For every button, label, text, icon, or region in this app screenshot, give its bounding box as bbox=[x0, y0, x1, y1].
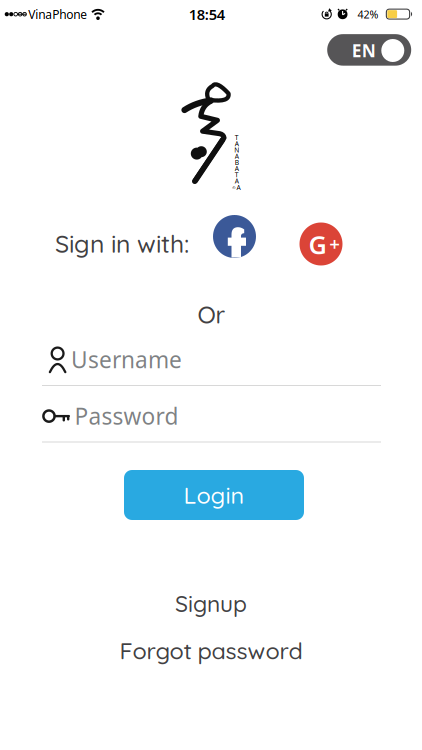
staticText: A bbox=[235, 152, 239, 161]
staticText: Username bbox=[71, 344, 182, 374]
staticText: T bbox=[235, 133, 239, 142]
button[interactable]: Sign in with Google bbox=[299, 222, 342, 265]
staticText: Forgot password bbox=[119, 636, 302, 665]
button[interactable]: Login bbox=[124, 470, 304, 520]
button[interactable]: Language: English bbox=[327, 34, 411, 66]
staticText: N bbox=[234, 145, 239, 154]
staticText: A bbox=[236, 183, 240, 192]
staticText: Signup bbox=[175, 589, 247, 618]
staticText: + bbox=[329, 231, 340, 256]
button[interactable]: Signup bbox=[175, 589, 247, 618]
staticText: A bbox=[235, 164, 239, 173]
button[interactable]: Password bbox=[42, 402, 381, 442]
staticText: 42% bbox=[357, 7, 378, 21]
staticText: A bbox=[235, 176, 239, 185]
staticText: T bbox=[235, 170, 239, 179]
staticText: Login bbox=[183, 480, 244, 510]
button[interactable]: Sign in with Facebook bbox=[213, 215, 256, 258]
staticText: VinaPhone bbox=[28, 6, 87, 22]
staticText: Or bbox=[197, 299, 225, 329]
staticText: B bbox=[235, 158, 239, 167]
staticText: EN bbox=[352, 39, 376, 62]
staticText: A bbox=[235, 139, 239, 148]
button[interactable]: Username bbox=[42, 346, 381, 386]
button[interactable]: Forgot password bbox=[119, 636, 302, 665]
staticText: 18:54 bbox=[189, 5, 225, 24]
staticText: Password bbox=[74, 401, 178, 431]
staticText: G bbox=[308, 227, 326, 261]
staticText: © bbox=[232, 185, 235, 190]
staticText: Sign in with: bbox=[55, 228, 189, 259]
